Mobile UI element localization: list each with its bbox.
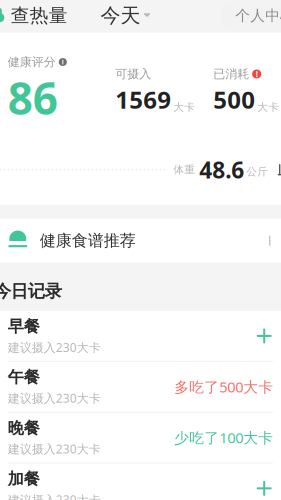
staticText: 大卡 [173, 101, 195, 114]
staticText: i [62, 58, 64, 66]
staticText: 多吃了500大卡 [174, 377, 273, 396]
staticText: 公斤 [246, 165, 268, 178]
staticText: ! [256, 69, 258, 79]
button[interactable]: 健康评分 [8, 55, 67, 69]
staticText: 查热量 [11, 4, 68, 27]
staticText: 个人中心 [235, 7, 281, 25]
staticText: 建议摄入230大卡 [8, 492, 101, 500]
staticText: 48.6 [199, 155, 244, 185]
staticText: 建议摄入230大卡 [8, 441, 101, 457]
button[interactable]: 体重 [0, 157, 281, 183]
button[interactable]: 加餐 [0, 463, 281, 500]
staticText: 建议摄入230大卡 [8, 390, 101, 406]
staticText: 今日记录 [0, 281, 62, 302]
button[interactable]: 早餐 [0, 311, 281, 361]
staticText: 少吃了100大卡 [174, 428, 273, 447]
button[interactable]: 健康食谱推荐 [0, 219, 281, 263]
button[interactable]: 午餐 [0, 362, 281, 412]
staticText: 健康评分 [8, 55, 56, 69]
staticText: 加餐 [8, 469, 40, 489]
button[interactable]: 今天 [96, 0, 154, 34]
staticText: 午餐 [8, 367, 40, 387]
staticText: 建议摄入230大卡 [8, 339, 101, 355]
staticText: 体重 [173, 163, 195, 176]
staticText: 86 [8, 68, 58, 127]
staticText: 可摄入 [115, 67, 151, 81]
staticText: 大卡 [257, 101, 279, 114]
button[interactable]: 个人中心 [221, 1, 281, 31]
button[interactable]: 查热量 [0, 0, 68, 33]
staticText: 已消耗 [213, 67, 249, 81]
staticText: 今天 [100, 3, 140, 28]
staticText: 早餐 [8, 317, 40, 336]
staticText: 1569 [115, 83, 171, 115]
button[interactable]: 晚餐 [0, 412, 281, 462]
staticText: 500 [213, 83, 255, 115]
staticText: 晚餐 [8, 418, 40, 438]
staticText: 健康食谱推荐 [40, 231, 136, 250]
